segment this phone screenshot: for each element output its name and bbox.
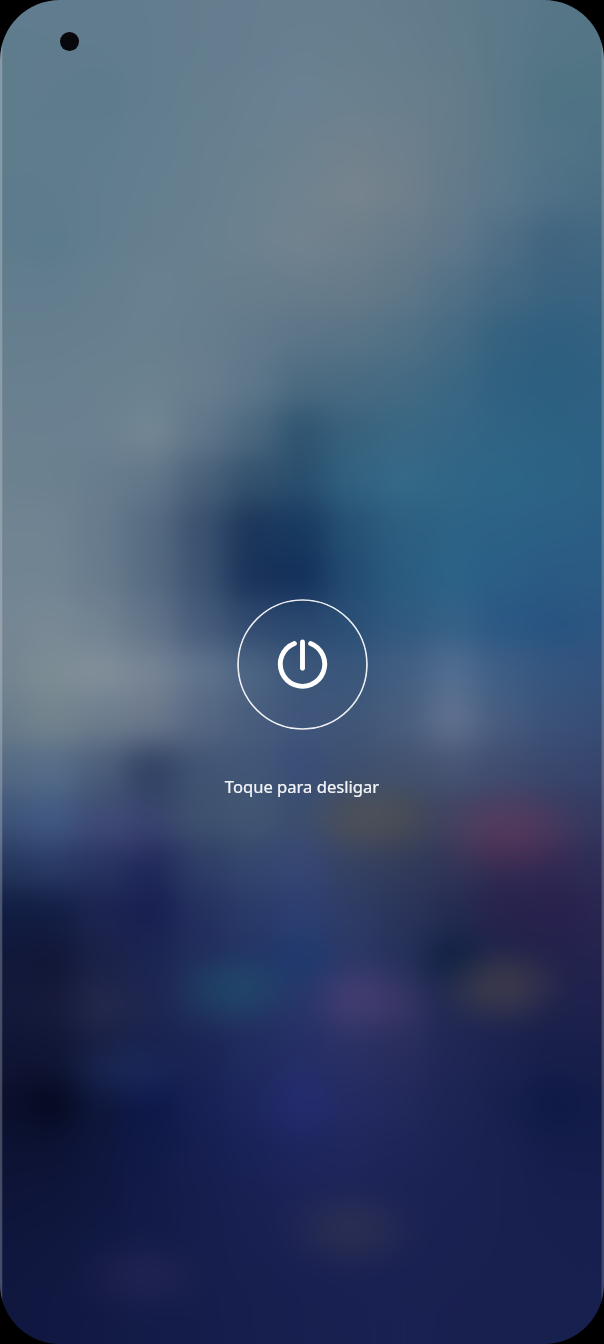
staticText: Toque para desligar	[0, 775, 604, 798]
button[interactable]: Desligar	[237, 599, 368, 730]
